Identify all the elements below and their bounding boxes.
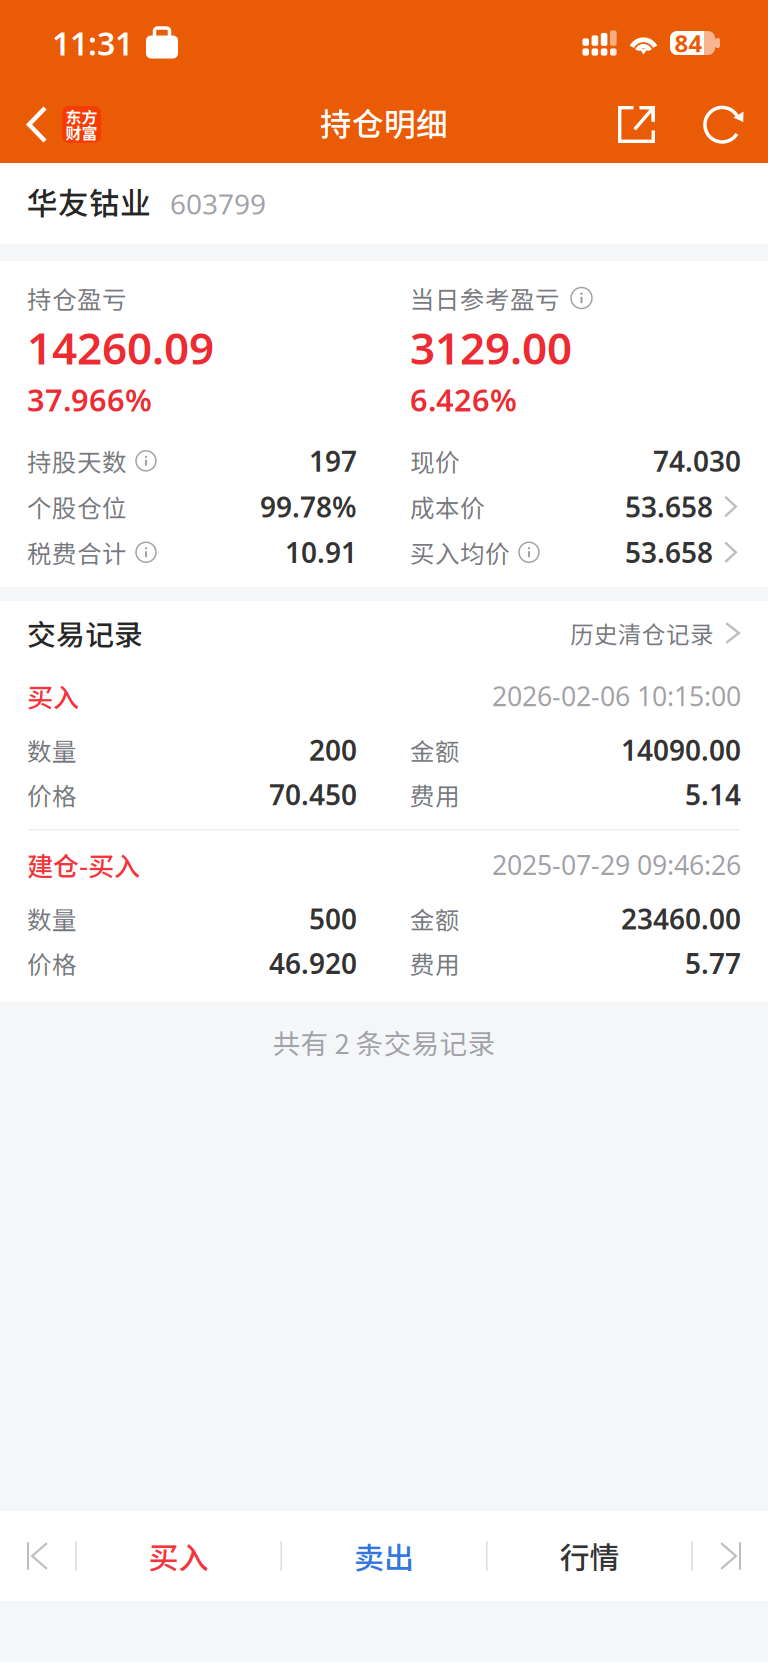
staticText: 买入均价 (410, 534, 510, 570)
staticText: 数量 (27, 732, 77, 768)
staticText: 3129.00 (410, 318, 572, 377)
staticText: 费用 (410, 777, 460, 812)
staticText: 持仓明细 (320, 99, 448, 145)
staticText: 价格 (27, 945, 77, 981)
staticText: 成本价 (410, 489, 485, 524)
staticText: 14090.00 (621, 731, 741, 769)
button[interactable]: Last page (693, 1511, 768, 1601)
staticText: 财富 (65, 121, 97, 144)
button[interactable]: 东方 (0, 95, 101, 153)
staticText: 行情 (559, 1534, 619, 1578)
staticText: 2026-02-06 10:15:00 (492, 678, 741, 714)
staticText: 53.658 (625, 534, 713, 571)
staticText: 费用 (410, 945, 460, 981)
staticText: 74.030 (653, 442, 741, 479)
staticText: 税费合计 (27, 534, 127, 570)
staticText: 交易记录 (27, 612, 143, 654)
staticText: 603799 (170, 185, 266, 222)
staticText: 197 (309, 442, 357, 479)
staticText: 金额 (410, 732, 460, 768)
staticText: 10.91 (285, 534, 357, 571)
button[interactable]: 买入 (77, 1511, 280, 1601)
staticText: 200 (309, 731, 357, 769)
staticText: 持股天数 (27, 443, 127, 479)
staticText: 持仓盈亏 (27, 280, 127, 316)
staticText: 数量 (27, 901, 77, 936)
staticText: 5.77 (685, 944, 741, 982)
staticText: 53.658 (625, 488, 713, 525)
staticText: 买入 (27, 677, 79, 715)
button[interactable]: First page (0, 1511, 75, 1601)
staticText: 2025-07-29 09:46:26 (492, 847, 741, 882)
staticText: 东方 (65, 105, 97, 128)
button[interactable]: 行情 (487, 1511, 691, 1601)
staticText: 卖出 (354, 1534, 414, 1578)
staticText: 500 (309, 900, 357, 937)
staticText: 金额 (410, 901, 460, 936)
staticText: 99.78% (260, 488, 357, 525)
staticText: 价格 (27, 777, 77, 812)
staticText: 现价 (410, 443, 460, 479)
button[interactable]: Share (603, 97, 695, 152)
staticText: 6.426% (410, 379, 517, 420)
staticText: 70.450 (269, 776, 357, 813)
button[interactable]: 历史清仓记录 (570, 610, 741, 656)
staticText: 个股仓位 (27, 489, 127, 524)
button[interactable]: Refresh (695, 96, 753, 152)
staticText: 华友钴业 (27, 179, 151, 223)
button[interactable]: 卖出 (282, 1511, 486, 1601)
staticText: 37.966% (27, 379, 152, 420)
staticText: 历史清仓记录 (570, 616, 714, 650)
staticText: 5.14 (685, 776, 741, 813)
staticText: 14260.09 (27, 318, 214, 377)
staticText: 买入 (148, 1534, 208, 1578)
staticText: 23460.00 (621, 900, 741, 937)
staticText: 11:31 (52, 22, 133, 64)
staticText: 共有 2 条交易记录 (272, 1022, 495, 1062)
staticText: 建仓-买入 (27, 846, 140, 883)
staticText: 46.920 (269, 944, 357, 982)
staticText: 当日参考盈亏 (410, 280, 560, 316)
staticText: 84 (674, 27, 702, 59)
